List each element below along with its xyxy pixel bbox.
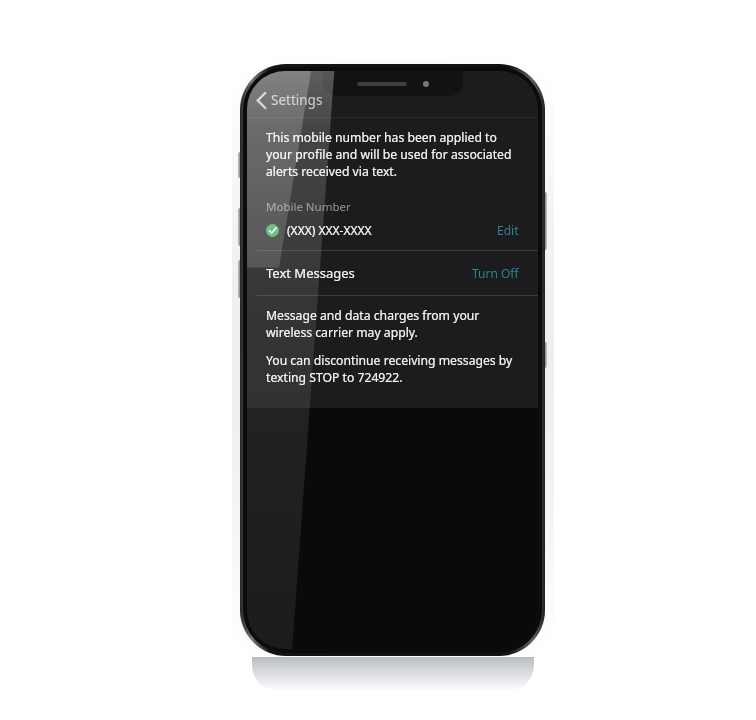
staticText: Mobile Number [266, 199, 351, 215]
staticText: Turn Off [472, 265, 519, 281]
staticText: Settings [271, 91, 323, 109]
staticText: (XXX) XXX-XXXX [287, 222, 372, 238]
staticText: Edit [497, 222, 519, 238]
button[interactable]: Settings [247, 85, 335, 117]
button[interactable]: Text Messages [247, 251, 538, 295]
button[interactable]: (XXX) XXX-XXXX [247, 221, 538, 246]
staticText: This mobile number has been applied to y… [266, 129, 519, 180]
staticText: Message and data charges from your wirel… [266, 307, 519, 341]
staticText: You can discontinue receiving messages b… [266, 352, 519, 386]
staticText: Text Messages [266, 264, 355, 282]
